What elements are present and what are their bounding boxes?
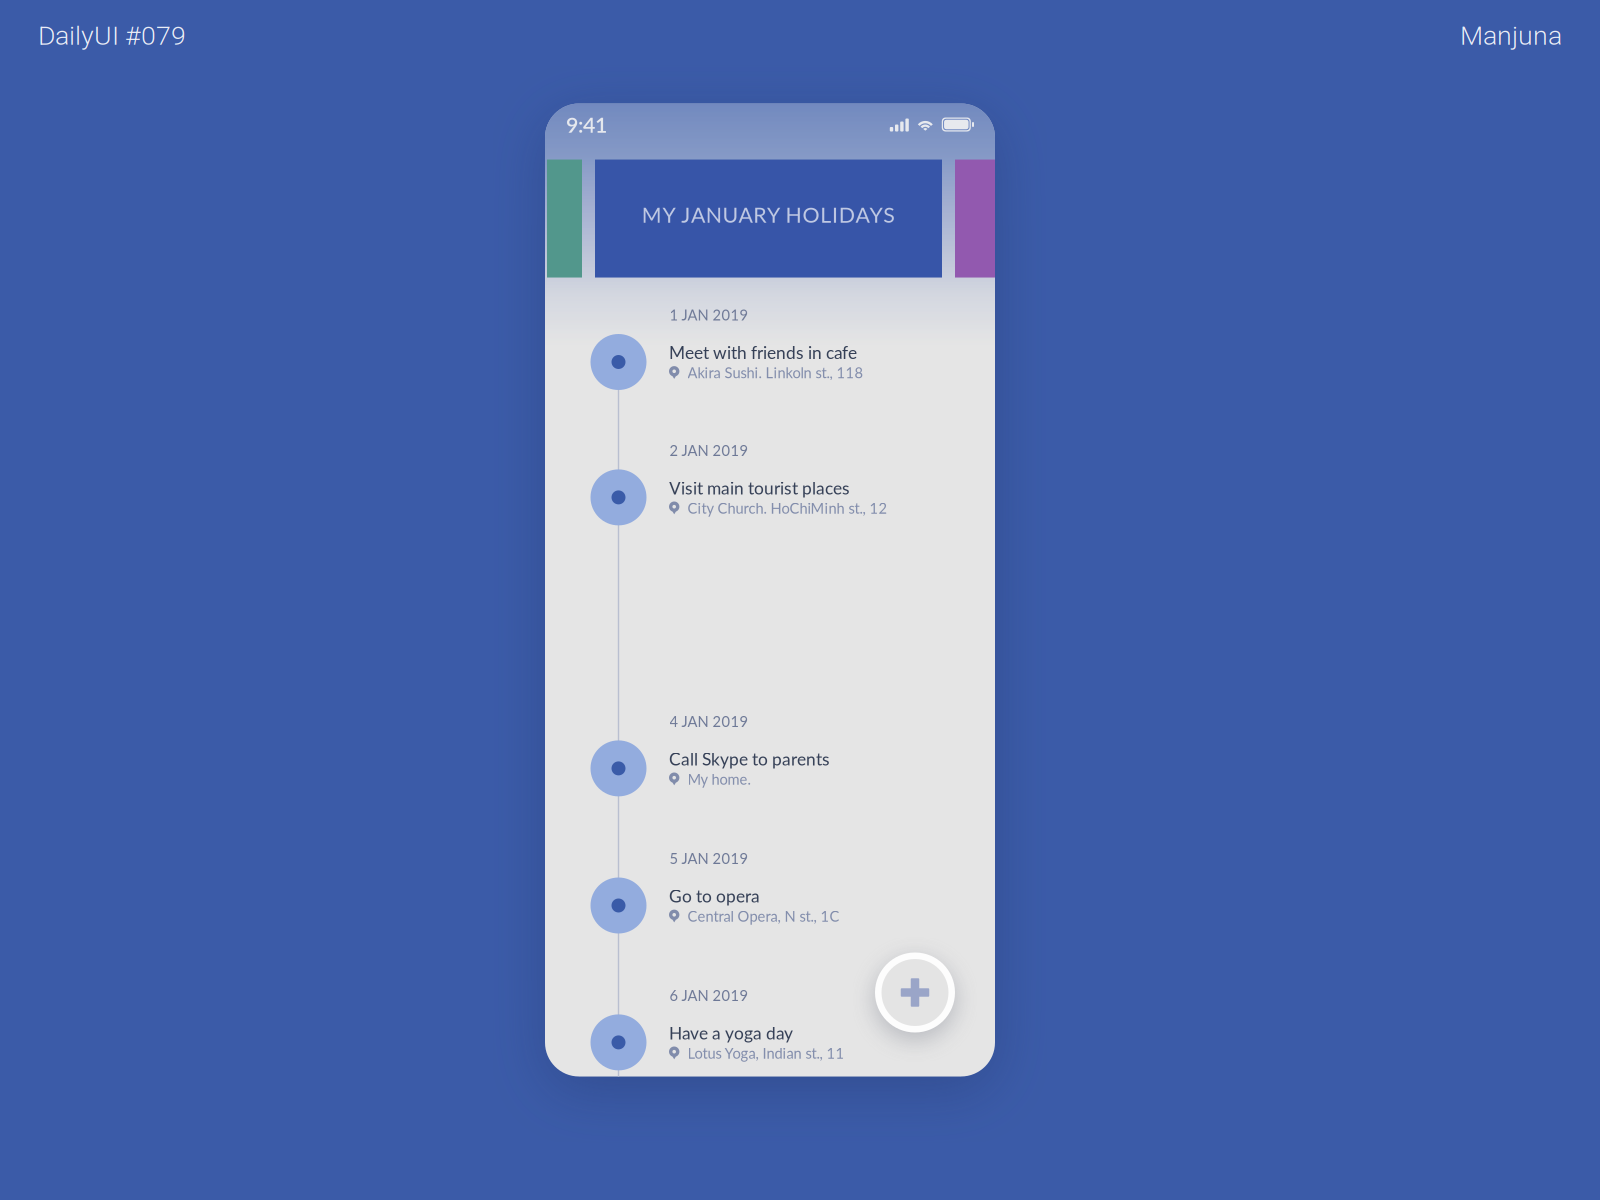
button[interactable]: 4 JAN 2019 (545, 708, 995, 798)
staticText: 5 JAN 2019 (669, 849, 748, 867)
button[interactable]: Add event (875, 952, 955, 1032)
button[interactable]: 5 JAN 2019 (545, 845, 995, 935)
button[interactable]: MY JANUARY HOLIDAYS (595, 159, 942, 277)
staticText: Central Opera, N st., 1C (687, 907, 839, 925)
staticText: Have a yoga day (669, 1022, 793, 1043)
staticText: Akira Sushi. Linkoln st., 118 (687, 364, 863, 381)
staticText: Meet with friends in cafe (669, 342, 857, 363)
staticText: Go to opera (669, 885, 760, 906)
staticText: 2 JAN 2019 (669, 441, 748, 459)
staticText: 1 JAN 2019 (669, 306, 748, 324)
staticText: DailyUI #079 (38, 20, 186, 51)
staticText: My home. (687, 770, 750, 788)
staticText: 6 JAN 2019 (669, 986, 748, 1004)
staticText: City Church. HoChiMinh st., 12 (687, 499, 887, 517)
staticText: Call Skype to parents (669, 748, 830, 769)
button[interactable]: 1 JAN 2019 (545, 302, 995, 392)
button[interactable]: 2 JAN 2019 (545, 437, 995, 527)
staticText: 9:41 (566, 112, 607, 137)
staticText: Visit main tourist places (669, 477, 850, 498)
staticText: MY JANUARY HOLIDAYS (642, 202, 895, 227)
staticText: Manjuna (1460, 20, 1562, 51)
staticText: 4 JAN 2019 (669, 712, 748, 730)
staticText: Lotus Yoga, Indian st., 11 (687, 1044, 844, 1062)
button[interactable]: 6 JAN 2019 (545, 982, 995, 1072)
